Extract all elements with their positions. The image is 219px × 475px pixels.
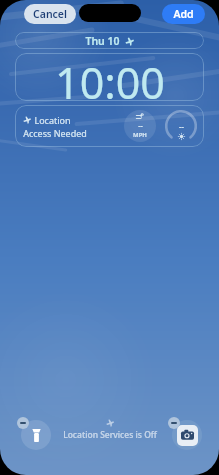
staticText: -- bbox=[138, 121, 143, 131]
staticText: Access Needed bbox=[23, 127, 87, 139]
button[interactable]: Remove bbox=[17, 417, 29, 429]
button[interactable]: Cancel bbox=[24, 4, 76, 24]
staticText: Add bbox=[173, 7, 194, 21]
button[interactable]: Flashlight bbox=[21, 420, 51, 450]
button[interactable]: Camera bbox=[172, 420, 202, 450]
staticText: Location Services is Off bbox=[63, 429, 157, 441]
button[interactable]: Remove bbox=[168, 417, 180, 429]
button[interactable]: UV index bbox=[164, 109, 198, 143]
button[interactable]: Thu 10 bbox=[15, 32, 204, 49]
button[interactable]: Location bbox=[15, 105, 124, 147]
staticText: Cancel bbox=[33, 7, 67, 21]
staticText: Location bbox=[34, 114, 71, 126]
button[interactable]: Add bbox=[162, 4, 205, 24]
button[interactable]: Wind speed bbox=[124, 110, 156, 142]
staticText: 10:00 bbox=[55, 53, 165, 101]
button[interactable]: 10:00 bbox=[15, 53, 204, 101]
staticText: Thu 10 bbox=[85, 34, 120, 48]
staticText: MPH bbox=[133, 131, 147, 139]
staticText: -- bbox=[179, 121, 184, 131]
